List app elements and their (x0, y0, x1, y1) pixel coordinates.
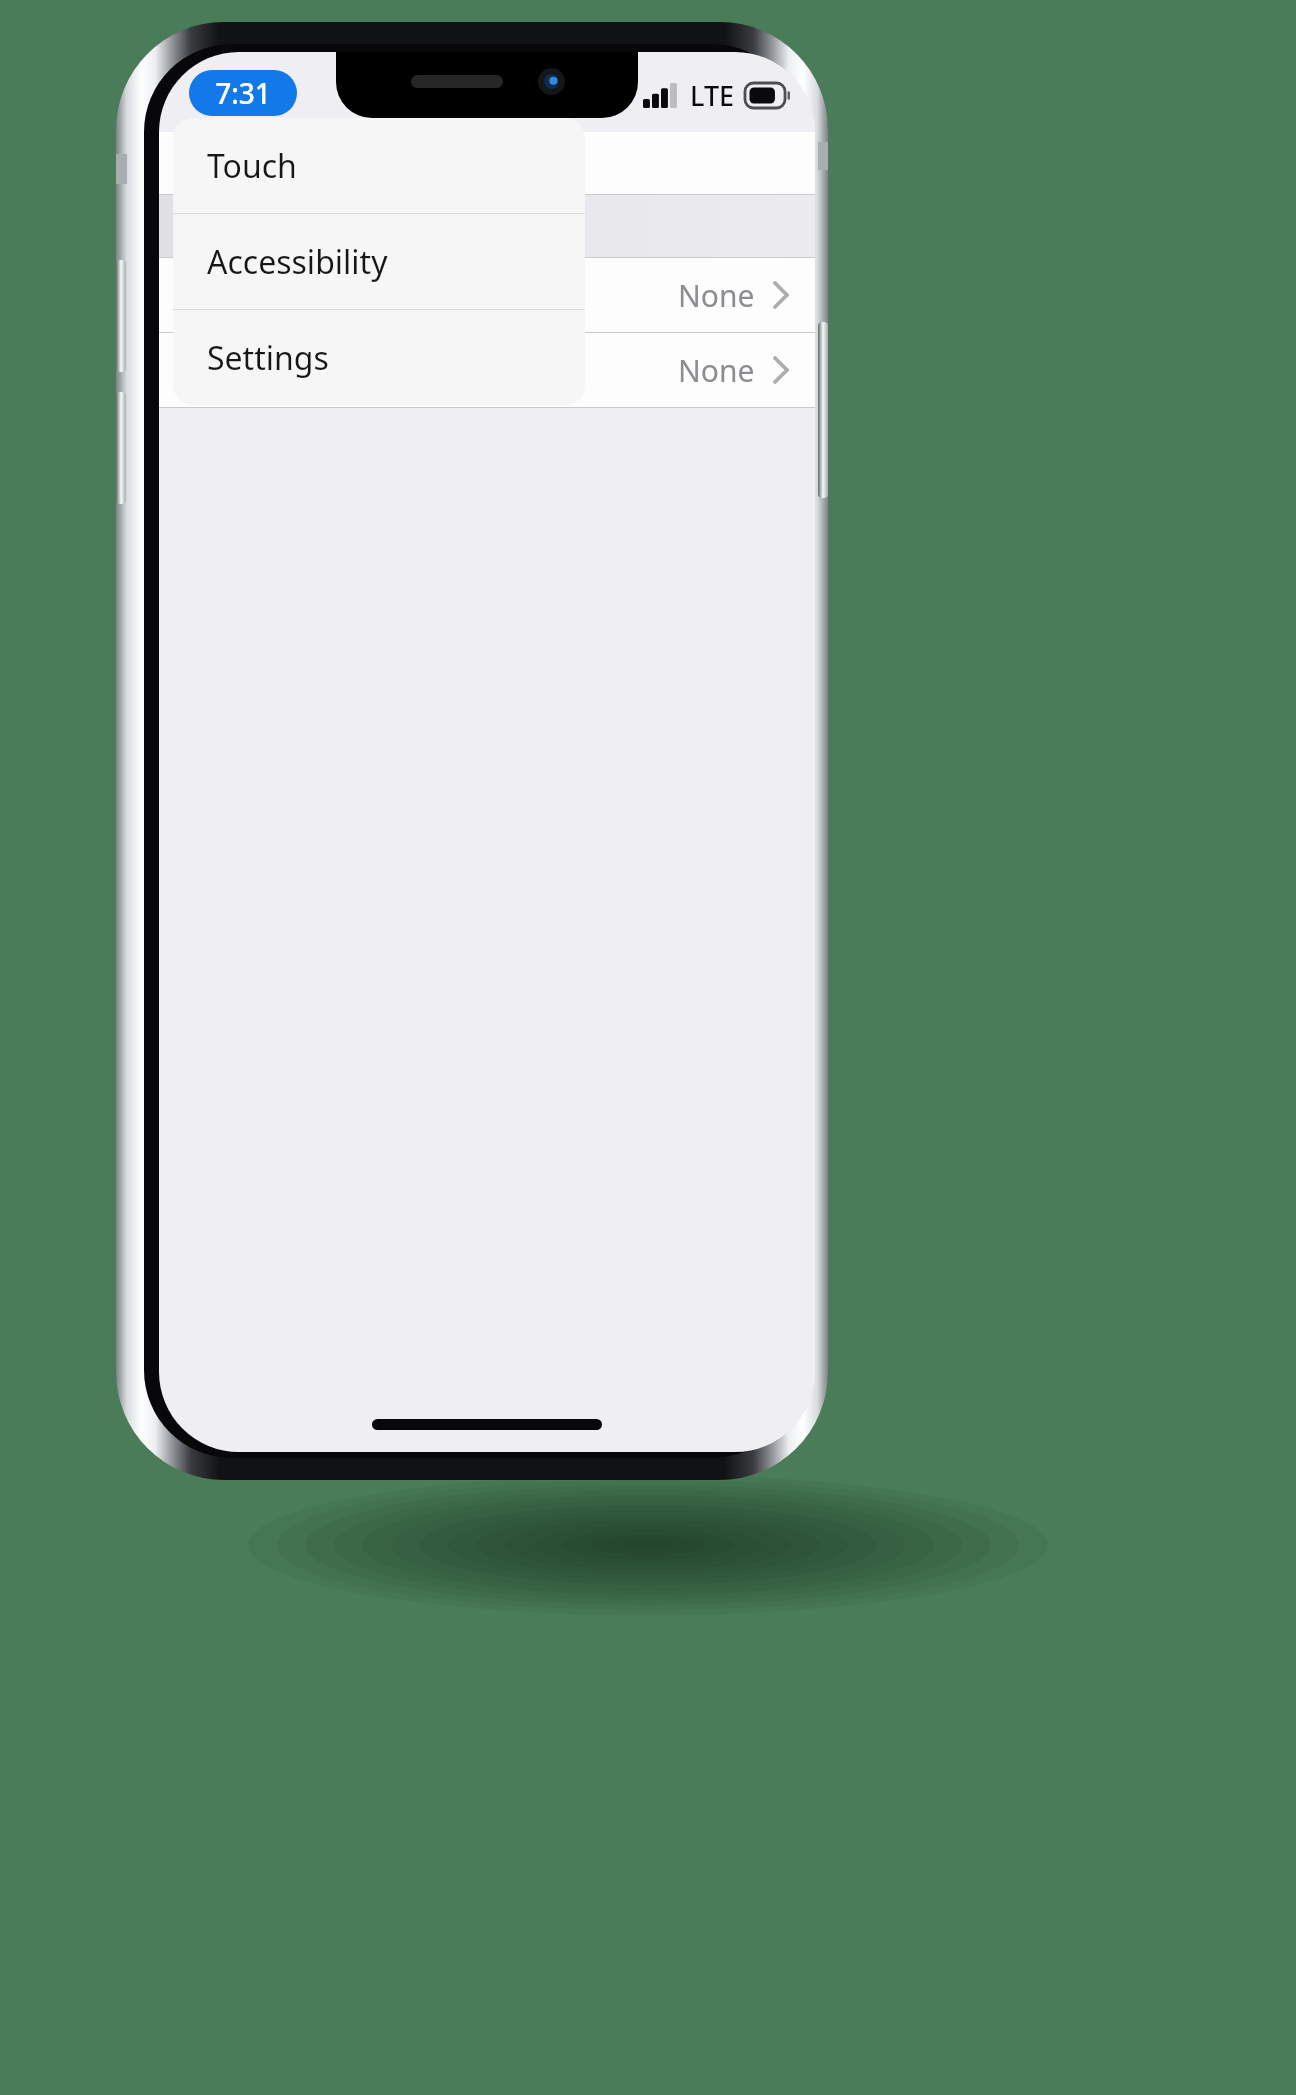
button[interactable]: 7:31 (189, 70, 297, 116)
other: Battery (745, 83, 791, 108)
staticText: LTE (690, 77, 735, 114)
button[interactable] (159, 132, 815, 194)
button[interactable]: None (159, 258, 815, 332)
staticText: None (678, 275, 755, 316)
staticText: None (678, 350, 755, 391)
button[interactable]: Accessibility (173, 214, 585, 309)
staticText: Triple Tap (191, 350, 327, 391)
staticText: Touch (207, 144, 297, 188)
staticText: Settings (207, 336, 329, 380)
button[interactable] (159, 195, 815, 257)
button[interactable]: Triple Tap (159, 333, 815, 407)
staticText: 7:31 (215, 74, 271, 112)
staticText: Accessibility (207, 240, 388, 284)
button[interactable]: Settings (173, 310, 585, 405)
other: Cellular signal (643, 83, 679, 108)
button[interactable]: Touch (173, 118, 585, 213)
